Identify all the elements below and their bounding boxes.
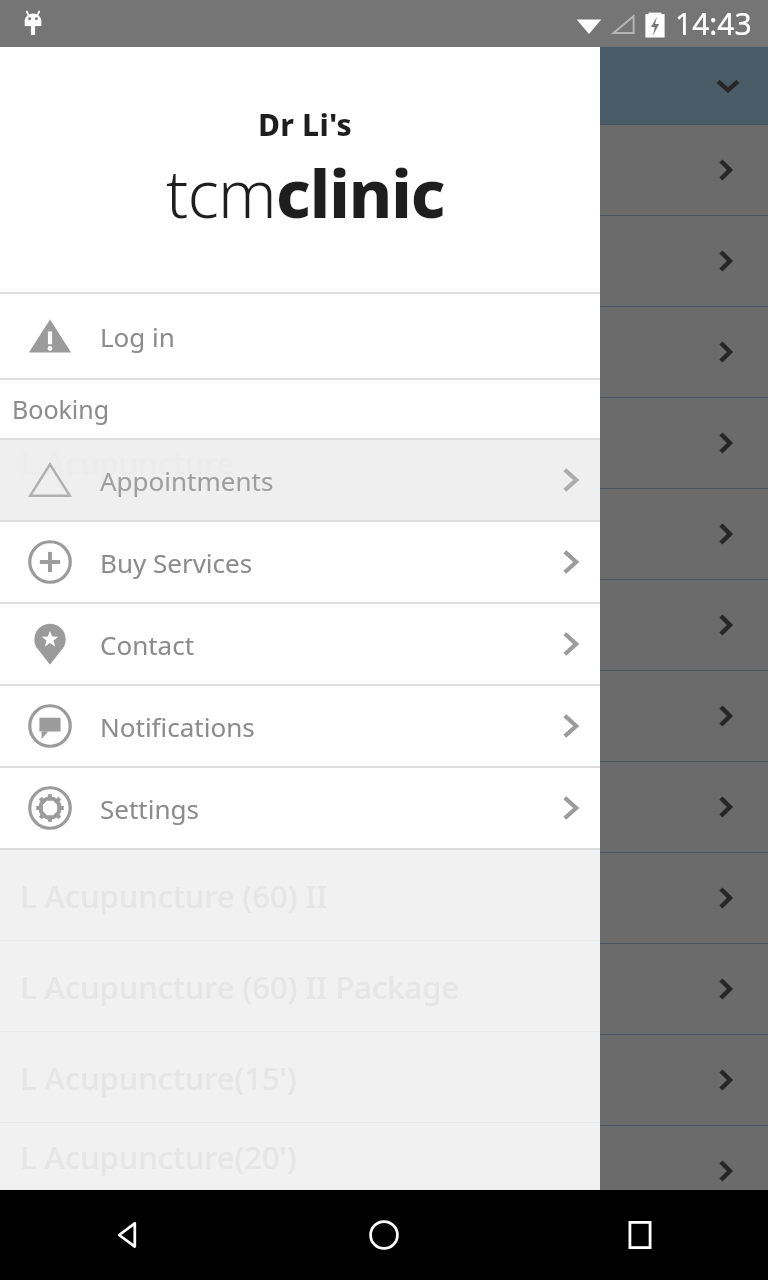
button[interactable]: Expand: [0, 47, 768, 124]
button[interactable]: Buy Services: [0, 522, 600, 602]
button[interactable]: [0, 307, 768, 397]
staticText: Dr Li's: [258, 104, 353, 145]
staticText: L Acupuncture(20'): [20, 1136, 297, 1178]
button[interactable]: Recent apps: [512, 1190, 768, 1280]
staticText: 14:43: [675, 3, 752, 44]
staticText: Contact: [100, 627, 195, 662]
button[interactable]: [0, 671, 768, 761]
staticText: tcm: [166, 147, 276, 237]
staticText: Booking: [12, 392, 110, 426]
button[interactable]: Expand: [706, 64, 750, 108]
staticText: Notifications: [100, 709, 255, 744]
button[interactable]: [0, 762, 768, 852]
staticText: L Acupuncture: [20, 442, 235, 484]
staticText: clinic: [276, 147, 445, 237]
button[interactable]: [0, 580, 768, 670]
button[interactable]: Contact: [0, 604, 600, 684]
button[interactable]: [0, 944, 768, 1034]
staticText: Appointments: [100, 463, 274, 498]
button[interactable]: [0, 125, 768, 215]
button[interactable]: [0, 1035, 768, 1125]
staticText: Settings: [100, 791, 199, 826]
button[interactable]: [0, 398, 768, 488]
staticText: Buy Services: [100, 545, 253, 580]
staticText: L Acupuncture(15'): [20, 1057, 297, 1099]
staticText: Log in: [100, 319, 175, 354]
button[interactable]: [0, 1126, 768, 1216]
button[interactable]: [0, 489, 768, 579]
button[interactable]: Log in: [0, 294, 600, 378]
button[interactable]: [0, 853, 768, 943]
button[interactable]: Home: [256, 1190, 512, 1280]
button[interactable]: Appointments: [0, 440, 600, 520]
button[interactable]: [0, 1217, 768, 1280]
staticText: L Acupuncture (60) II: [20, 875, 328, 917]
button[interactable]: Notifications: [0, 686, 600, 766]
staticText: L Acupuncture (60) II Package: [20, 966, 460, 1008]
button[interactable]: Back: [0, 1190, 256, 1280]
button[interactable]: Settings: [0, 768, 600, 848]
button[interactable]: [0, 216, 768, 306]
